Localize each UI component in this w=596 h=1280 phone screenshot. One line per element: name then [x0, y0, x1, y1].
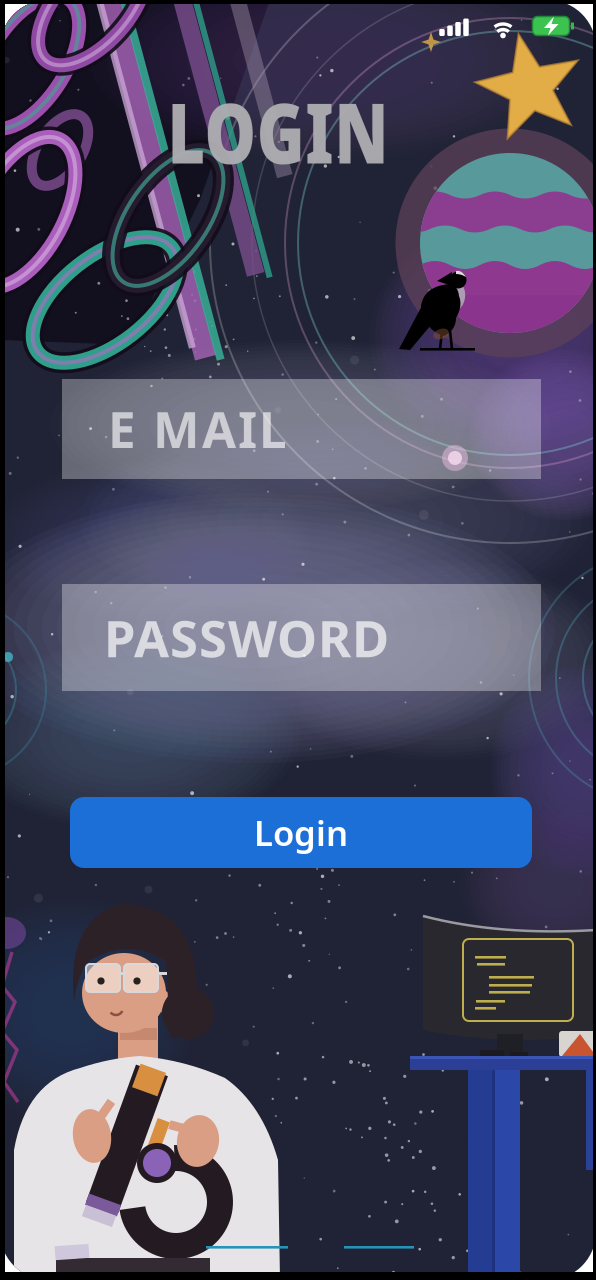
- staticText: Login: [254, 809, 348, 855]
- button[interactable]: E MAIL: [62, 379, 541, 479]
- staticText: LOGIN: [134, 75, 421, 187]
- button[interactable]: PASSWORD: [62, 584, 541, 691]
- button[interactable]: Login: [70, 797, 532, 868]
- staticText: E MAIL: [108, 396, 287, 462]
- staticText: PASSWORD: [104, 604, 389, 671]
